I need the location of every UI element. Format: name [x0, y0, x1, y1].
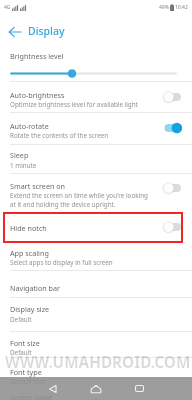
staticText: Brightness level — [10, 51, 64, 61]
staticText: 4G — [4, 4, 11, 11]
button[interactable]: Home — [84, 377, 108, 400]
button[interactable]: Recent apps — [127, 377, 151, 400]
staticText: Hide notch — [10, 223, 47, 233]
button[interactable]: Brightness slider — [0, 64, 192, 82]
staticText: 1 minute — [10, 161, 190, 170]
staticText: Sleep — [10, 150, 29, 160]
staticText: 10:42 — [175, 4, 188, 11]
staticText: Optimize brightness level for available … — [10, 100, 154, 109]
button[interactable]: Navigate up — [5, 22, 24, 41]
button[interactable] — [0, 357, 192, 377]
staticText: Auto-brightness — [10, 90, 65, 100]
button[interactable] — [0, 144, 192, 173]
staticText: Rotate the contents of the screen — [10, 131, 154, 140]
staticText: Navigation bar — [10, 283, 60, 293]
staticText: App scaling — [10, 248, 49, 258]
staticText: Display size — [10, 304, 50, 314]
button[interactable] — [0, 270, 192, 297]
button[interactable] — [0, 297, 192, 331]
staticText: Font size — [10, 338, 40, 348]
staticText: Font type — [10, 367, 42, 377]
button[interactable]: Toggle on — [158, 120, 184, 136]
staticText: Default — [10, 315, 190, 324]
staticText: Auto-rotate — [10, 121, 49, 131]
button[interactable]: Toggle off — [158, 89, 184, 105]
staticText: Select apps to display in full screen — [10, 258, 154, 267]
button[interactable]: Back — [41, 377, 65, 400]
button[interactable]: Toggle off — [158, 180, 184, 196]
button[interactable] — [0, 173, 192, 212]
staticText: WWW.UMAHDROID.COM — [5, 352, 191, 373]
staticText: Display — [28, 24, 65, 38]
button[interactable] — [0, 212, 192, 243]
staticText: Smart screen on — [10, 181, 66, 191]
button[interactable] — [0, 112, 192, 144]
button[interactable] — [0, 331, 192, 357]
button[interactable] — [0, 81, 192, 112]
staticText: 49% — [159, 4, 169, 11]
staticText: Screen saver — [10, 392, 53, 400]
staticText: Default — [10, 348, 190, 357]
button[interactable] — [0, 243, 192, 270]
button[interactable]: Toggle off — [158, 219, 184, 235]
staticText: Extend the screen on time while you're l… — [10, 191, 150, 209]
staticText: Default font — [10, 377, 46, 386]
